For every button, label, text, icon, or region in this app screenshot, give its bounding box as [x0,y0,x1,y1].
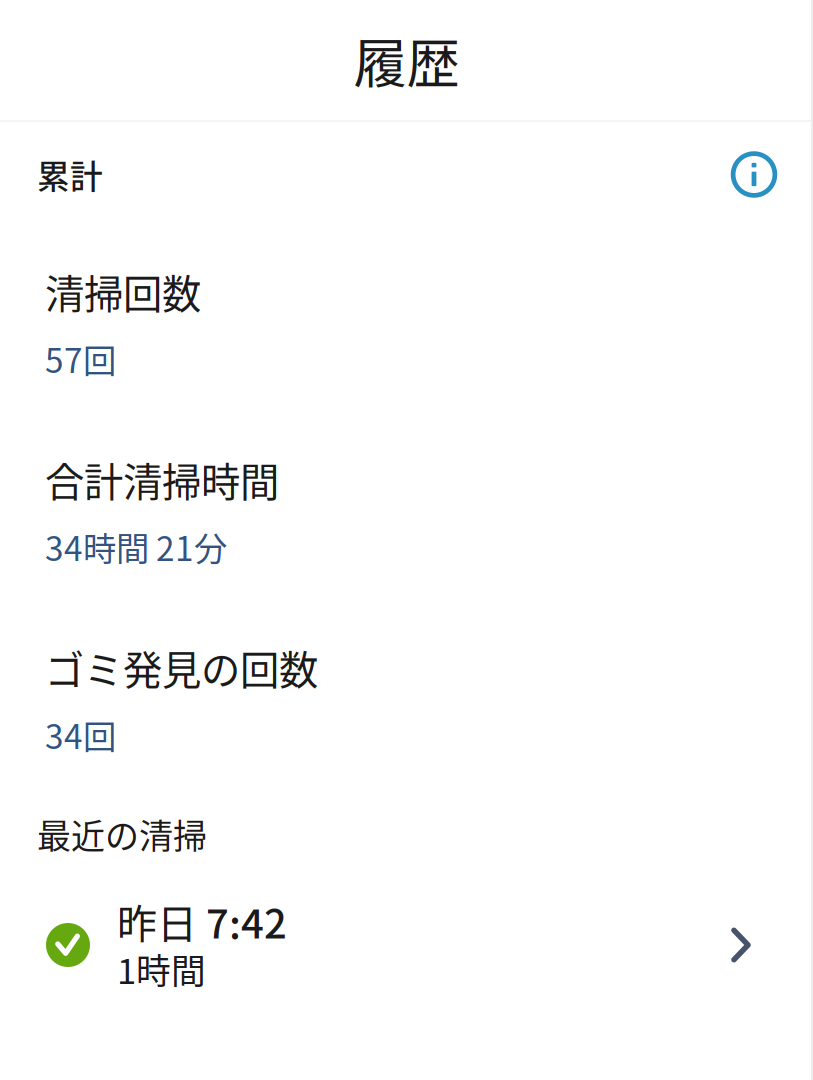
staticText: 34時間 21分 [45,522,227,571]
staticText: 昨日 7:42 [117,893,287,949]
button[interactable]: 昨日 7:42 [0,889,813,1001]
staticText: 累計 [37,151,103,198]
staticText: ゴミ発見の回数 [45,639,318,696]
button[interactable]: 情報 [723,143,785,205]
staticText: 34回 [45,710,116,759]
staticText: 清掃回数 [45,263,201,320]
staticText: 最近の清掃 [37,809,207,859]
staticText: 履歴 [353,21,459,99]
staticText: 合計清掃時間 [45,451,279,508]
staticText: 57回 [45,334,116,383]
staticText: 1時間 [117,944,206,994]
